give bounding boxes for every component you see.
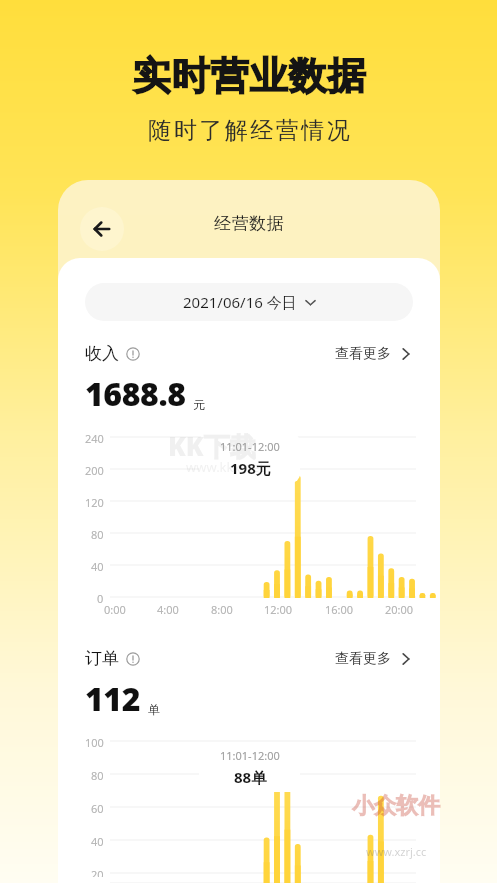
staticText: 4:00	[157, 602, 179, 617]
staticText: 元	[193, 397, 205, 412]
staticText: www.kkx.net	[186, 458, 264, 476]
staticText: 实时营业数据	[132, 52, 366, 100]
staticText: 198元	[230, 458, 271, 478]
staticText: 查看更多	[335, 650, 391, 668]
staticText: 0:00	[104, 602, 126, 617]
staticText: 11:01-12:00	[220, 748, 280, 763]
button[interactable]: 查看更多	[335, 650, 413, 668]
staticText: 40	[91, 834, 104, 849]
staticText: 100	[85, 735, 104, 750]
staticText: 16:00	[325, 602, 354, 617]
button[interactable]: 11:01-12:00	[199, 742, 300, 792]
staticText: 120	[85, 495, 104, 510]
staticText: 112	[85, 677, 141, 721]
button[interactable]: 11:01-12:00	[199, 433, 300, 483]
staticText: 8:00	[211, 602, 233, 617]
staticText: 12:00	[264, 602, 293, 617]
other: Info	[126, 347, 140, 361]
staticText: 80	[91, 768, 104, 783]
button[interactable]: 查看更多	[335, 345, 413, 363]
staticText: 1688.8	[85, 372, 186, 416]
staticText: 80	[91, 527, 104, 542]
staticText: 0	[97, 591, 104, 606]
staticText: 收入	[85, 343, 119, 364]
other: Info	[126, 652, 140, 666]
staticText: 小众软件	[352, 792, 440, 820]
staticText: 查看更多	[335, 345, 391, 363]
staticText: 240	[85, 431, 104, 446]
staticText: 20:00	[385, 602, 414, 617]
button[interactable]: Back	[80, 207, 124, 251]
staticText: 随时了解经营情况	[147, 116, 351, 145]
staticText: 88单	[234, 767, 267, 787]
staticText: 60	[91, 801, 104, 816]
staticText: 11:01-12:00	[220, 439, 280, 454]
staticText: 200	[85, 463, 104, 478]
staticText: www.xzrj.cc	[366, 844, 427, 859]
staticText: KK下载	[168, 428, 256, 464]
staticText: 单	[148, 702, 160, 717]
button[interactable]: 2021/06/16 今日	[85, 283, 413, 321]
staticText: 2021/06/16 今日	[183, 292, 297, 312]
staticText: 40	[91, 559, 104, 574]
staticText: 经营数据	[214, 213, 284, 234]
staticText: 20	[91, 867, 104, 877]
staticText: 订单	[85, 648, 119, 669]
